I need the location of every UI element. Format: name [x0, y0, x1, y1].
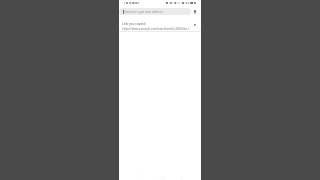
- button[interactable]: Voice search: [190, 8, 200, 15]
- staticText: Link you copied: [122, 22, 146, 26]
- button[interactable]: Fill in suggestion: [190, 23, 200, 28]
- button[interactable]: Link you copied: [119, 17, 201, 31]
- button[interactable]: Search or type web address: [119, 8, 191, 15]
- staticText: Search or type web address: [124, 10, 163, 14]
- staticText: https://www.example.com/watch/article-20…: [122, 27, 189, 31]
